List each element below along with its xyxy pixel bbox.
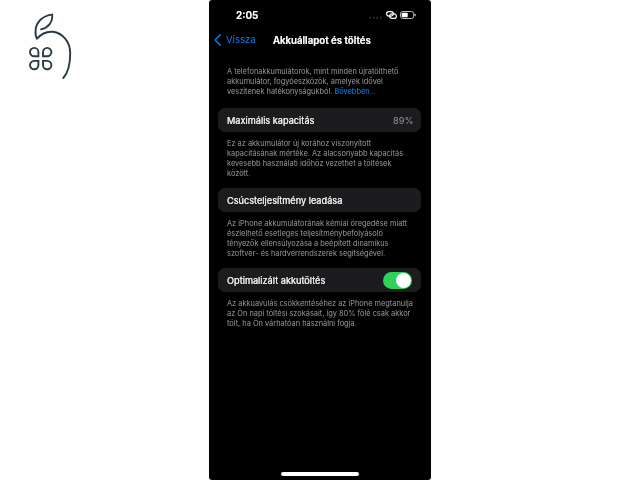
button[interactable]: Maximális kapacitás xyxy=(218,108,421,132)
button[interactable]: Optimalizált akkutöltés xyxy=(218,268,421,292)
staticText: Csúcsteljesítmény leadása xyxy=(227,195,343,206)
staticText: 2:05 xyxy=(236,9,259,21)
staticText: Az akkuavulás csökkentéséhez az iPhone m… xyxy=(227,299,413,328)
staticText: 89% xyxy=(393,115,414,126)
staticText: Az iPhone akkumulátorának kémiai öregedé… xyxy=(227,219,413,258)
staticText: Maximális kapacitás xyxy=(227,115,315,126)
staticText: Optimalizált akkutöltés xyxy=(227,275,326,286)
other: Csatlakoztatva xyxy=(386,11,397,19)
staticText: Vissza xyxy=(226,34,256,46)
staticText: Ez az akkumulátor új korához viszonyítot… xyxy=(227,139,413,178)
other: Akkumulátor xyxy=(400,11,416,19)
button[interactable]: Csúcsteljesítmény leadása xyxy=(218,188,421,212)
button[interactable]: Optimalizált akkutöltés kapcsoló xyxy=(383,272,412,289)
button[interactable]: Vissza xyxy=(212,30,260,50)
staticText: A telefonakkumulátorok, mint minden újra… xyxy=(227,67,413,96)
staticText: Akkuállapot és töltés xyxy=(273,35,371,47)
